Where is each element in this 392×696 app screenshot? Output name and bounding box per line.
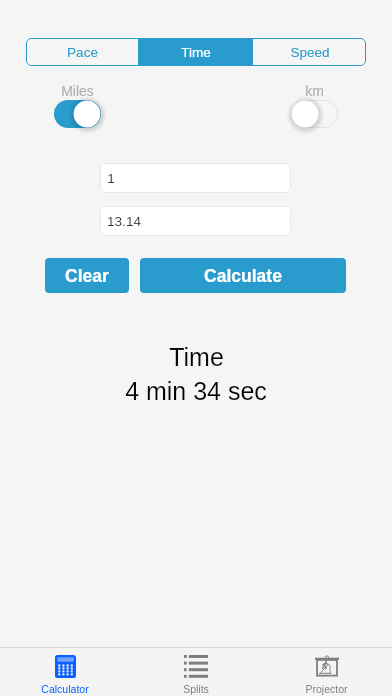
button[interactable]: Speed <box>253 38 366 66</box>
button[interactable]: Calculator <box>0 648 130 696</box>
staticText: Time <box>169 343 224 371</box>
button[interactable]: Clear <box>45 258 129 293</box>
button[interactable]: Splits <box>130 648 261 696</box>
staticText: Calculator <box>41 683 89 695</box>
button[interactable]: 1 <box>100 163 291 193</box>
staticText: 13.14 <box>107 214 141 229</box>
button[interactable]: km <box>291 100 338 128</box>
staticText: Clear <box>65 266 109 286</box>
staticText: 4 min 34 sec <box>125 377 267 405</box>
staticText: Time <box>181 45 211 60</box>
staticText: Miles <box>61 83 94 99</box>
staticText: km <box>305 83 324 99</box>
staticText: Speed <box>290 45 330 60</box>
button[interactable]: Pace <box>26 38 138 66</box>
staticText: Projector <box>305 683 348 695</box>
button[interactable]: Calculate <box>140 258 346 293</box>
staticText: Calculate <box>204 266 282 286</box>
button[interactable]: 13.14 <box>100 206 291 236</box>
button[interactable]: Projector <box>261 648 392 696</box>
staticText: 1 <box>107 171 115 186</box>
staticText: Splits <box>183 683 209 695</box>
button[interactable]: Miles <box>54 100 101 128</box>
button[interactable]: Time <box>139 38 252 66</box>
staticText: Pace <box>67 45 98 60</box>
